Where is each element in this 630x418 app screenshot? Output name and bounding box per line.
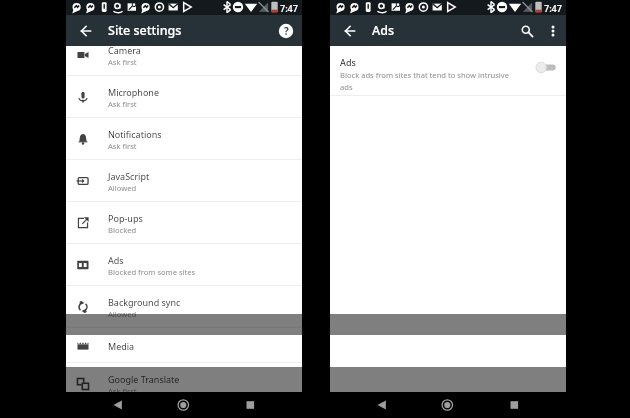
button[interactable]: Notifications [66, 118, 302, 160]
button[interactable]: Back [339, 20, 361, 42]
button[interactable]: Search [516, 20, 538, 42]
staticText: Microphone [108, 86, 159, 98]
button[interactable]: Help [278, 23, 294, 39]
button[interactable]: Ads [330, 46, 566, 96]
staticText: JavaScript [108, 170, 150, 182]
staticText: Ask first [108, 99, 137, 109]
staticText: Ads [340, 56, 356, 68]
staticText: Ads [108, 254, 124, 266]
staticText: Ask first [108, 141, 137, 151]
button[interactable]: Media [66, 328, 302, 363]
staticText: Ask first [108, 57, 137, 67]
button[interactable]: Back [90, 392, 146, 418]
button[interactable]: Ads [66, 244, 302, 286]
staticText: Ask first [108, 386, 137, 396]
button[interactable]: Pop-ups [66, 202, 302, 244]
staticText: Background sync [108, 296, 181, 308]
staticText: Media [108, 340, 135, 352]
staticText: 7:47 [544, 2, 562, 14]
staticText: Pop-ups [108, 212, 143, 224]
staticText: Block ads from sites that tend to show i… [340, 70, 510, 92]
staticText: Ads [372, 22, 395, 39]
button[interactable]: More options [542, 20, 564, 42]
button[interactable]: Camera [66, 46, 302, 76]
staticText: Notifications [108, 128, 162, 140]
staticText: 7:47 [280, 2, 298, 14]
button[interactable]: Recent apps [222, 392, 278, 418]
button[interactable]: Back [354, 392, 410, 418]
button[interactable]: JavaScript [66, 160, 302, 202]
staticText: Blocked [108, 225, 137, 235]
button[interactable]: Home [420, 392, 476, 418]
button[interactable]: Google Translate [66, 363, 302, 405]
button[interactable]: Microphone [66, 76, 302, 118]
staticText: Allowed [108, 309, 137, 319]
button[interactable]: Recent apps [486, 392, 542, 418]
button[interactable]: Background sync [66, 286, 302, 328]
staticText: Blocked from some sites [108, 267, 196, 277]
staticText: Google Translate [108, 373, 180, 385]
staticText: Allowed [108, 183, 137, 193]
staticText: Camera [108, 46, 141, 56]
staticText: Site settings [108, 22, 182, 39]
button[interactable]: Back [75, 20, 97, 42]
button[interactable]: Home [156, 392, 212, 418]
staticText: ? [284, 24, 289, 38]
